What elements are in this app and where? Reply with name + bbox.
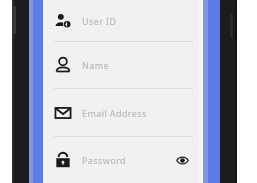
staticText: Password (82, 154, 126, 166)
button[interactable]: User ID (43, 0, 203, 41)
button[interactable]: Email Address (43, 89, 203, 136)
button[interactable]: Show password (172, 150, 192, 170)
staticText: User ID (82, 15, 117, 27)
button[interactable]: Name (43, 42, 203, 88)
button[interactable]: Password (43, 137, 203, 183)
staticText: Name (82, 59, 109, 71)
staticText: Email Address (82, 107, 147, 119)
